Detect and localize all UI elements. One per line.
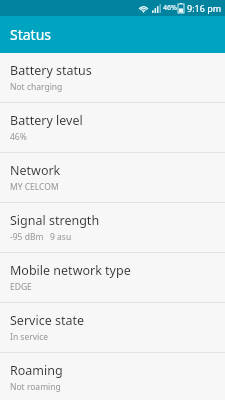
button[interactable]: Network (0, 153, 225, 202)
staticText: 46% (163, 3, 177, 13)
button[interactable]: Roaming (0, 353, 225, 400)
button[interactable]: Service state (0, 303, 225, 352)
staticText: Not charging (10, 81, 63, 93)
button[interactable]: Battery status (0, 53, 225, 102)
button[interactable]: Signal strength (0, 203, 225, 252)
staticText: Not roaming (10, 381, 61, 393)
button[interactable]: Battery level (0, 103, 225, 152)
staticText: MY CELCOM (10, 181, 59, 193)
staticText: Roaming (10, 362, 63, 379)
staticText: Status (10, 25, 52, 44)
staticText: In service (10, 331, 49, 343)
staticText: Mobile network type (10, 262, 131, 279)
staticText: Signal strength (10, 212, 100, 229)
staticText: Service state (10, 312, 85, 329)
staticText: EDGE (10, 281, 32, 293)
staticText: 9:16 pm (187, 2, 222, 14)
staticText: Network (10, 162, 61, 179)
staticText: Battery level (10, 112, 83, 129)
button[interactable]: Mobile network type (0, 253, 225, 302)
staticText: -95 dBm 9 asu (10, 231, 72, 243)
staticText: Battery status (10, 62, 92, 79)
staticText: 46% (10, 131, 27, 143)
